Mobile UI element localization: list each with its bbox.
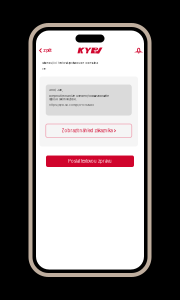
staticText: Následující textová zpráva bude odeslána — [41, 61, 97, 65]
button[interactable]: Notifications — [132, 46, 142, 55]
staticText: Klepnutím na níže uvedený odkaz zobrazít… — [49, 94, 109, 101]
button[interactable]: Zobrazit náhled zákazníka — [46, 124, 132, 137]
staticText: https://kyb-so.com/p/0Yc9zGRO — [49, 103, 94, 107]
staticText: Ahoj Jan, — [49, 88, 63, 92]
button[interactable]: Poslat textovou zprávu — [46, 155, 134, 167]
button[interactable]: Zpět — [38, 47, 55, 54]
staticText: Poslat textovou zprávu — [68, 159, 112, 164]
staticText: Jan — [41, 67, 46, 70]
staticText: Zpět — [43, 48, 51, 53]
staticText: Zobrazit náhled zákazníka — [62, 128, 113, 133]
